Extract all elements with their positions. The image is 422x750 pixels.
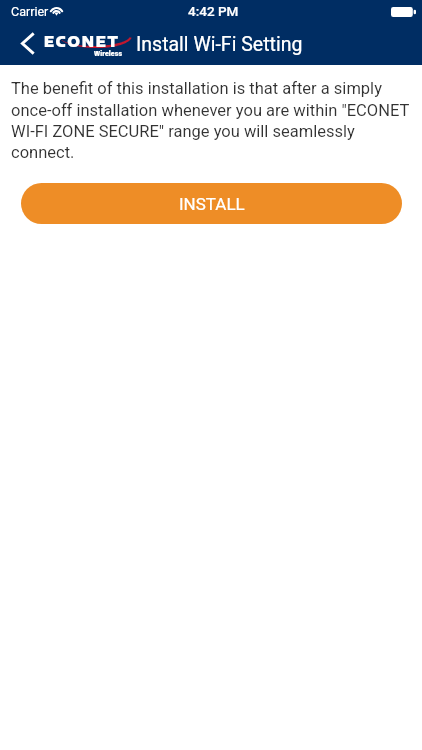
staticText: The benefit of this installation is that… [11,79,412,162]
staticText: Install Wi-Fi Setting [136,33,303,56]
staticText: 4:42 PM [188,3,239,19]
staticText: Wireless [94,50,123,58]
button[interactable]: Back [9,23,45,63]
staticText: INSTALL [179,194,245,214]
button[interactable]: INSTALL [21,183,402,224]
staticText: ECONET [44,33,120,50]
staticText: Carrier [11,4,49,19]
